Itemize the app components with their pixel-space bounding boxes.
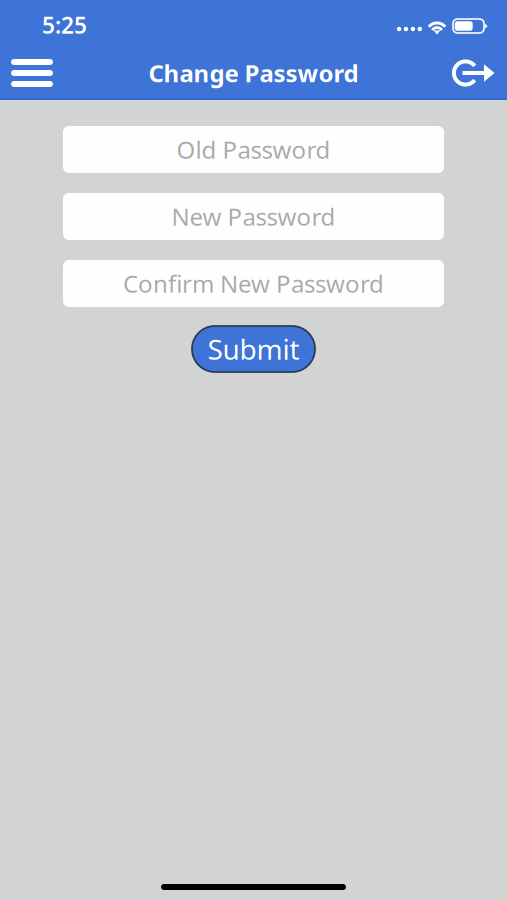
staticText: Change Password [148,57,358,89]
button[interactable]: Submit [192,326,315,372]
staticText: New Password [171,201,335,232]
staticText: Confirm New Password [123,268,384,299]
button[interactable]: Confirm New Password [63,260,444,307]
button[interactable]: Old Password [63,126,444,173]
staticText: 5:25 [42,10,87,40]
button[interactable]: Menu [5,48,59,98]
staticText: Old Password [176,134,330,165]
staticText: Submit [207,330,299,368]
button[interactable]: Log out [447,48,501,98]
button[interactable]: New Password [63,193,444,240]
